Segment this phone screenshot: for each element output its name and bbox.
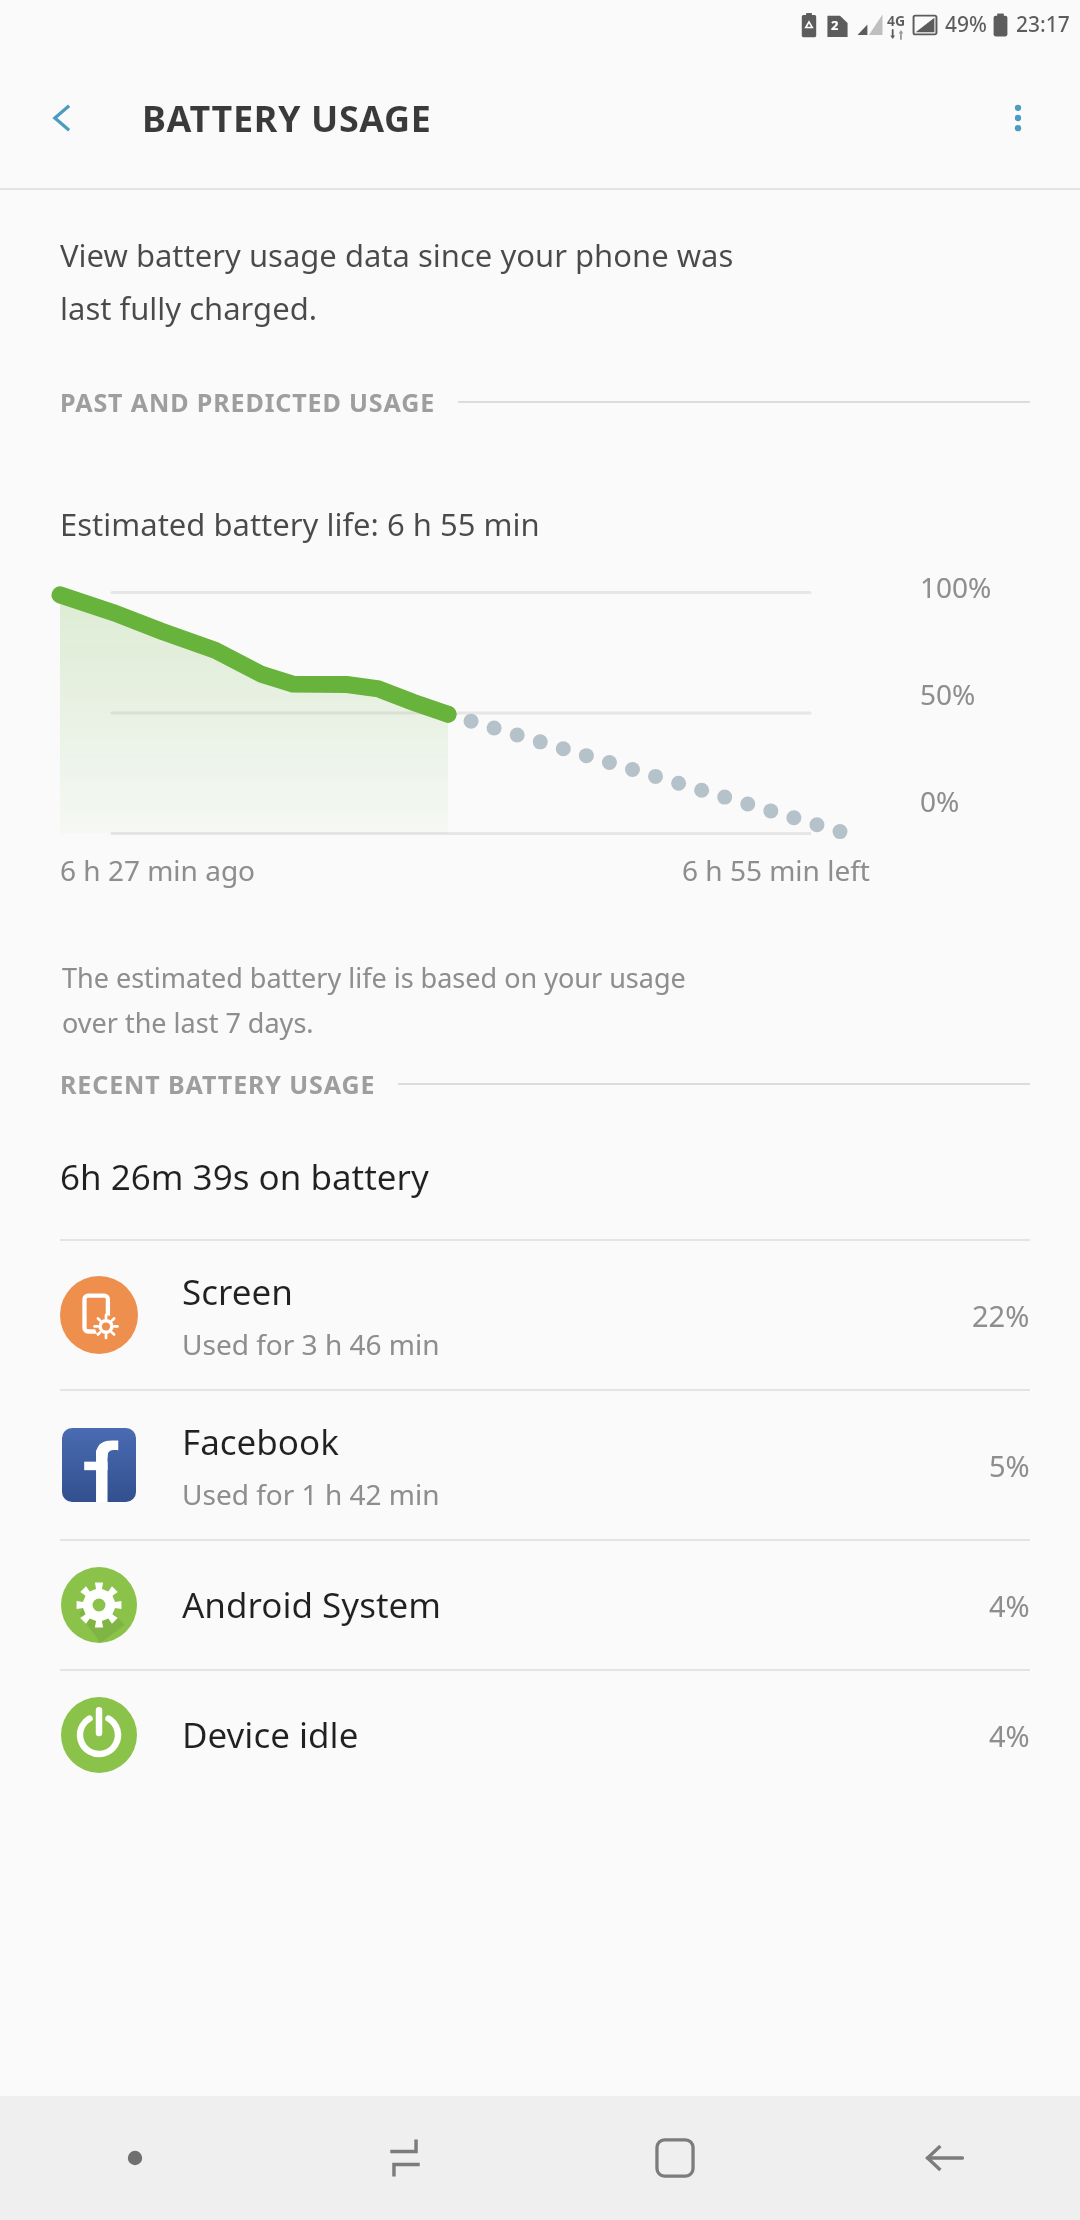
staticText: Used for 1 h 42 min [182,1475,440,1513]
staticText: 0% [920,782,960,820]
staticText: The estimated battery life is based on y… [62,959,686,996]
button[interactable]: Device idle [0,1671,1080,1799]
button[interactable]: More options [982,82,1054,154]
staticText: Facebook [182,1418,339,1466]
staticText: 22% [972,1296,1030,1335]
staticText: over the last 7 days. [62,1004,314,1041]
button[interactable]: Screen [0,1241,1080,1389]
staticText: 5% [989,1446,1030,1485]
staticText: 4% [989,1716,1030,1755]
staticText: 2 [831,16,839,34]
staticText: 50% [920,675,976,713]
button[interactable]: Back [34,89,92,147]
staticText: Screen [182,1268,293,1316]
staticText: Used for 3 h 46 min [182,1325,440,1363]
staticText: 6h 26m 39s on battery [60,1153,429,1201]
staticText: 4G [887,11,906,30]
button[interactable]: Back [810,2096,1080,2220]
staticText: 6 h 55 min left [682,851,870,889]
button[interactable]: Facebook [0,1391,1080,1539]
staticText: Android System [182,1581,442,1629]
staticText: 49% [945,10,987,39]
staticText: BATTERY USAGE [142,94,432,143]
staticText: PAST AND PREDICTED USAGE [60,385,436,419]
staticText: View battery usage data since your phone… [60,234,734,276]
button[interactable]: Android System [0,1541,1080,1669]
button[interactable]: Recents [270,2096,540,2220]
staticText: RECENT BATTERY USAGE [60,1067,376,1101]
staticText: Device idle [182,1711,359,1759]
staticText: 4% [989,1586,1030,1625]
button[interactable]: Menu [0,2096,270,2220]
button[interactable]: Home [540,2096,810,2220]
staticText: 23:17 [1016,10,1070,39]
staticText: 6 h 27 min ago [60,851,256,889]
staticText: 100% [920,568,992,606]
staticText: Estimated battery life: 6 h 55 min [60,503,540,545]
staticText: last fully charged. [60,287,318,329]
